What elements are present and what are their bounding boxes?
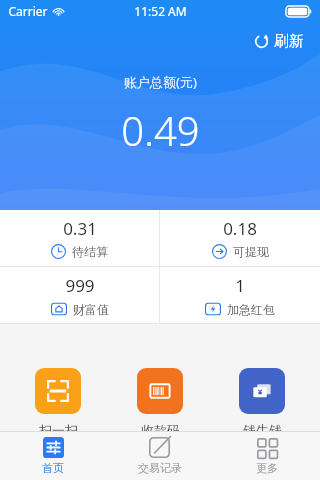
button[interactable]: 首页 — [0, 432, 106, 480]
staticText: 账户总额(元) — [124, 73, 197, 91]
button[interactable]: 更多 — [213, 432, 320, 480]
staticText: 待结算 — [72, 244, 108, 259]
button[interactable]: 0.31 — [0, 210, 159, 266]
staticText: 可提现 — [233, 244, 269, 259]
button[interactable]: 收款码 — [116, 368, 204, 431]
button[interactable]: 1 — [160, 267, 320, 323]
staticText: 0.18 — [223, 217, 257, 240]
staticText: 刷新 — [274, 32, 304, 51]
staticText: 更多 — [256, 461, 278, 475]
staticText: 0.49 — [121, 103, 200, 157]
staticText: 0.31 — [63, 217, 97, 240]
staticText: 扫一扫 — [39, 422, 78, 431]
staticText: 11:52 AM — [134, 3, 187, 19]
staticText: 1 — [235, 274, 245, 297]
button[interactable]: 999 — [0, 267, 159, 323]
staticText: 首页 — [42, 461, 64, 475]
staticText: 交易记录 — [138, 461, 182, 475]
button[interactable]: 刷新 — [248, 28, 310, 55]
button[interactable]: 扫一扫 — [14, 368, 102, 431]
staticText: 收款码 — [141, 422, 180, 431]
staticText: Carrier — [8, 3, 48, 19]
button[interactable]: 交易记录 — [106, 432, 213, 480]
staticText: 财富值 — [73, 302, 109, 317]
staticText: 钱生钱 — [243, 422, 282, 431]
button[interactable]: 钱生钱 — [218, 368, 306, 431]
staticText: 加急红包 — [227, 302, 275, 317]
button[interactable]: 0.18 — [160, 210, 320, 266]
staticText: 999 — [65, 274, 95, 297]
